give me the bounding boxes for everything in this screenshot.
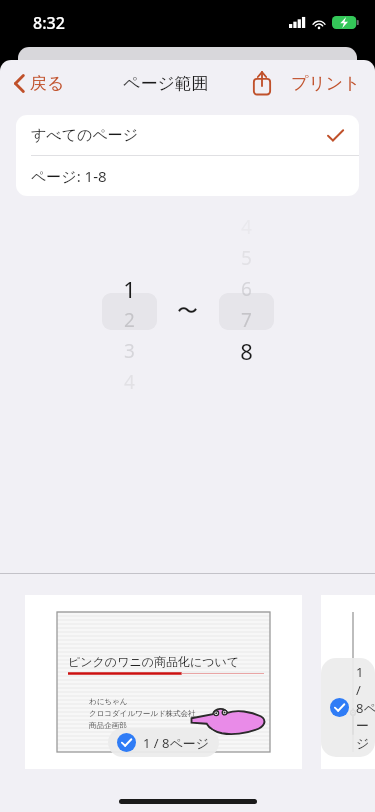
button[interactable]	[219, 293, 274, 330]
staticText: 〜	[177, 298, 198, 324]
button[interactable]: ピンクのワニの商品化について	[321, 595, 375, 769]
staticText: 戻る	[30, 73, 65, 94]
button[interactable]: すべてのページ	[16, 115, 359, 155]
button[interactable]	[102, 293, 157, 330]
button[interactable]: プリント	[289, 69, 363, 98]
staticText: すべてのページ	[31, 126, 139, 145]
staticText: 5	[241, 245, 252, 271]
button[interactable]: 1 / 8ページ	[108, 728, 219, 757]
staticText: ページ範囲	[123, 73, 209, 94]
staticText: わにちゃん	[89, 697, 128, 706]
button[interactable]: ページ: 1-8	[16, 156, 359, 196]
staticText: 6	[241, 276, 252, 302]
staticText: 1	[123, 274, 136, 304]
button[interactable]: ピンクのワニの商品化について	[25, 595, 302, 769]
staticText: 4	[124, 369, 135, 395]
staticText: 商品企画部	[89, 721, 127, 730]
staticText: ピンクのワニの商品化について	[68, 654, 240, 669]
staticText: 8:32	[33, 12, 65, 34]
button[interactable]: 1 / 8ページ	[321, 658, 375, 757]
staticText: 1 / 8ページ	[356, 663, 366, 752]
staticText: 2	[124, 307, 135, 333]
staticText: クロコダイルワールド株式会社	[89, 709, 196, 718]
staticText: 3	[124, 338, 135, 364]
staticText: プリント	[291, 73, 361, 94]
button[interactable]: 戻る	[10, 69, 69, 98]
button[interactable]: 共有	[247, 66, 277, 100]
staticText: ページ: 1-8	[31, 166, 107, 186]
staticText: 7	[241, 307, 252, 333]
staticText: 8	[240, 336, 253, 366]
staticText: 1 / 8ページ	[143, 734, 210, 752]
